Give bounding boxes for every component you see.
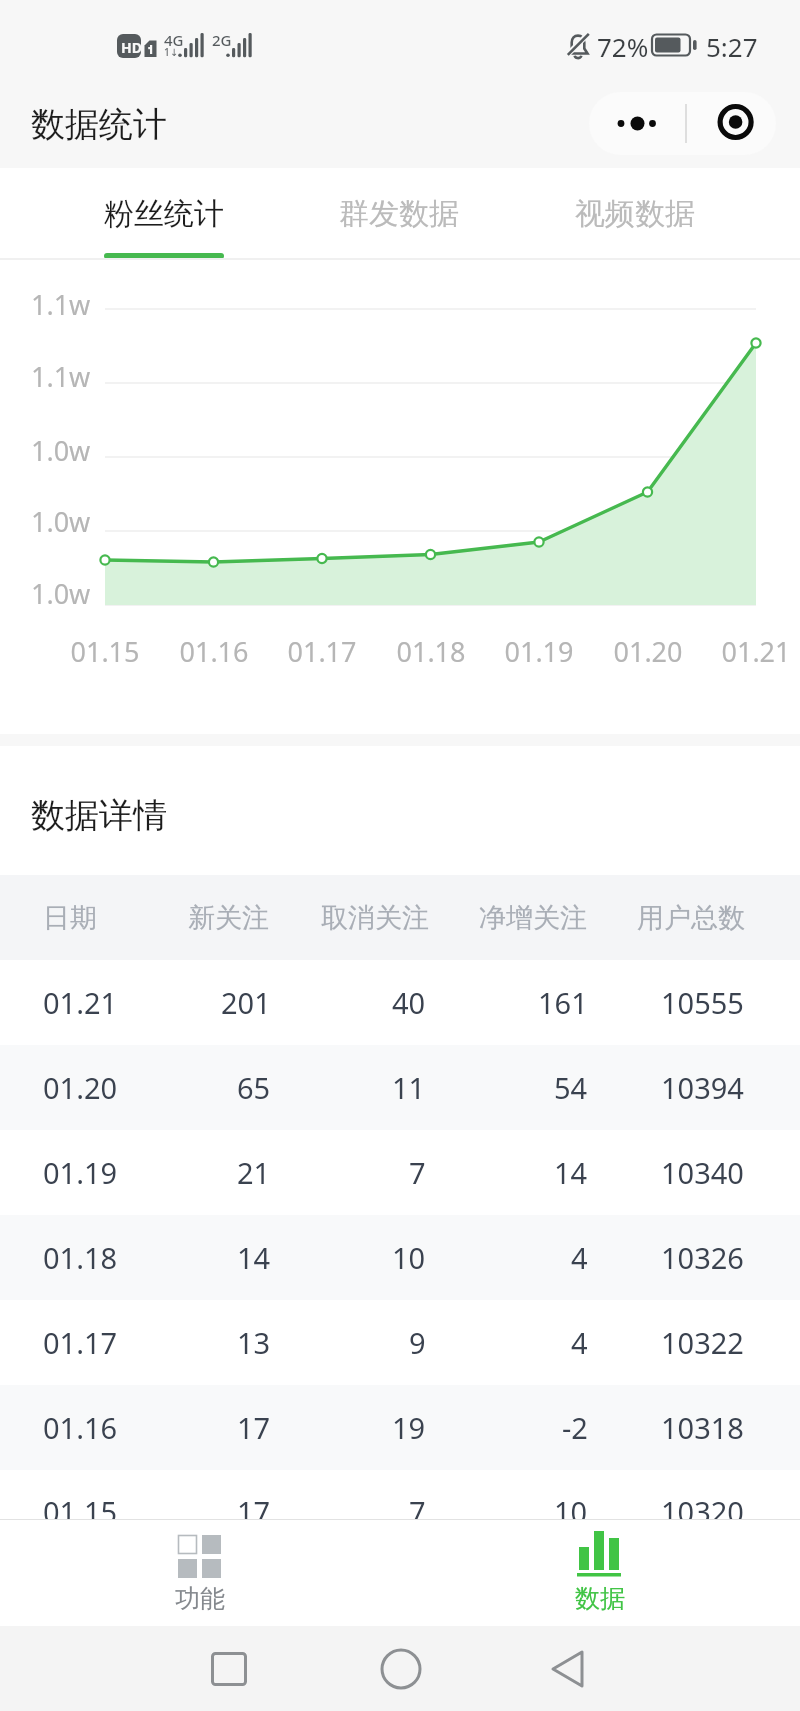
staticText: 14 — [554, 1153, 588, 1192]
button[interactable]: 01.17 — [0, 1300, 800, 1385]
staticText: 01.16 — [43, 1408, 118, 1447]
staticText: 视频数据 — [575, 195, 695, 233]
staticText: 01.17 — [43, 1323, 118, 1362]
staticText: 01.21 — [43, 983, 118, 1022]
staticText: 1.1w — [31, 358, 91, 395]
staticText: 01.18 — [43, 1238, 118, 1277]
staticText: 1↓ — [164, 45, 179, 59]
button[interactable]: 功能 — [90, 1520, 310, 1626]
staticText: 10320 — [661, 1492, 744, 1519]
button[interactable]: 01.19 — [0, 1130, 800, 1215]
staticText: 10318 — [661, 1408, 744, 1447]
staticText: 01.19 — [43, 1153, 118, 1192]
staticText: 取消关注 — [321, 901, 429, 935]
staticText: 19 — [392, 1408, 426, 1447]
staticText: 01.18 — [395, 633, 467, 670]
staticText: 01.20 — [43, 1068, 118, 1107]
button[interactable]: 数据 — [490, 1520, 710, 1626]
staticText: 10 — [392, 1238, 426, 1277]
staticText: 10340 — [661, 1153, 744, 1192]
staticText: 2G — [212, 30, 232, 50]
staticText: 14 — [237, 1238, 271, 1277]
staticText: 01.20 — [612, 633, 684, 670]
staticText: 5:27 — [706, 29, 758, 64]
staticText: 161 — [538, 983, 588, 1022]
staticText: 4G — [164, 30, 184, 50]
button[interactable]: 01.15 — [0, 1470, 800, 1519]
staticText: 10326 — [661, 1238, 744, 1277]
button[interactable]: 群发数据 — [281, 168, 517, 260]
button[interactable]: More options — [589, 92, 685, 155]
staticText: 40 — [392, 983, 426, 1022]
staticText: 1.1w — [31, 286, 91, 323]
staticText: 01.16 — [178, 633, 250, 670]
button[interactable]: 视频数据 — [517, 168, 753, 260]
button[interactable]: Close mini program — [685, 92, 776, 155]
staticText: 21 — [237, 1153, 271, 1192]
button[interactable]: Home — [316, 1626, 486, 1711]
staticText: 功能 — [175, 1583, 225, 1614]
staticText: 7 — [409, 1492, 426, 1519]
staticText: 日期 — [43, 901, 97, 935]
button[interactable]: 粉丝统计 — [46, 168, 282, 260]
staticText: 用户总数 — [637, 901, 745, 935]
staticText: 数据 — [575, 1583, 625, 1614]
staticText: HD — [121, 38, 142, 57]
button[interactable]: 01.16 — [0, 1385, 800, 1470]
button[interactable]: Back — [484, 1626, 654, 1711]
button[interactable]: 01.18 — [0, 1215, 800, 1300]
staticText: 65 — [237, 1068, 271, 1107]
staticText: 群发数据 — [339, 195, 459, 233]
staticText: 201 — [221, 983, 271, 1022]
staticText: 1.0w — [31, 503, 91, 540]
staticText: 1.0w — [31, 432, 91, 469]
staticText: 17 — [237, 1408, 271, 1447]
staticText: 粉丝统计 — [104, 195, 224, 233]
staticText: -2 — [562, 1408, 588, 1447]
staticText: 数据详情 — [31, 794, 167, 837]
staticText: 17 — [237, 1492, 271, 1519]
button[interactable]: 01.20 — [0, 1045, 800, 1130]
staticText: 01.15 — [43, 1492, 118, 1519]
staticText: 72% — [597, 29, 649, 64]
staticText: 10394 — [661, 1068, 744, 1107]
button[interactable]: 01.21 — [0, 960, 800, 1045]
staticText: 1.0w — [31, 575, 91, 612]
staticText: 10555 — [661, 983, 744, 1022]
staticText: 01.15 — [69, 633, 141, 670]
staticText: 净增关注 — [479, 901, 587, 935]
staticText: 13 — [237, 1323, 271, 1362]
staticText: 11 — [392, 1068, 426, 1107]
staticText: 01.21 — [720, 633, 792, 670]
staticText: 54 — [554, 1068, 588, 1107]
staticText: 10322 — [661, 1323, 744, 1362]
staticText: 4 — [571, 1323, 588, 1362]
staticText: 10 — [554, 1492, 588, 1519]
staticText: 7 — [409, 1153, 426, 1192]
staticText: 01.19 — [503, 633, 575, 670]
button[interactable]: Recent apps — [144, 1626, 314, 1711]
staticText: 新关注 — [188, 901, 269, 935]
staticText: 数据统计 — [31, 103, 167, 146]
staticText: 9 — [409, 1323, 426, 1362]
staticText: 4 — [571, 1238, 588, 1277]
staticText: 01.17 — [286, 633, 358, 670]
